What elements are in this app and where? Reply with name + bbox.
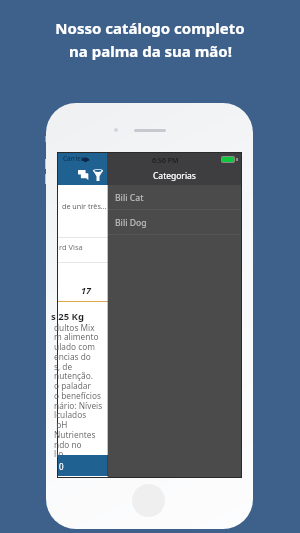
staticText: 0 — [59, 461, 64, 472]
staticText: o benefícios — [54, 390, 101, 401]
button[interactable]: Bili Cat — [108, 185, 241, 210]
staticText: na palma da sua mão! — [69, 41, 232, 61]
staticText: ulado com — [54, 341, 95, 352]
staticText: o paladar — [54, 380, 91, 391]
staticText: Carrier — [63, 154, 84, 162]
staticText: 6:56 PM — [152, 156, 179, 166]
staticText: nutenção. — [54, 370, 93, 381]
staticText: de unir três... — [62, 201, 107, 211]
staticText: pH — [54, 419, 68, 430]
staticText: 17 — [81, 284, 91, 296]
staticText: dultos Mix — [54, 322, 95, 333]
button[interactable]: Bili Dog — [108, 210, 241, 235]
staticText: lio. — [54, 448, 66, 459]
staticText: lculados — [54, 409, 87, 420]
staticText: m alimento — [54, 331, 99, 342]
staticText: Bili Cat — [115, 192, 144, 204]
staticText: rd Visa — [59, 242, 83, 252]
staticText: Bili Dog — [115, 217, 147, 229]
staticText: Nosso catálogo completo — [55, 18, 245, 38]
staticText: nário: Níveis — [54, 400, 103, 411]
button[interactable]: Comparar — [76, 168, 91, 182]
staticText: ndo no — [54, 439, 82, 450]
staticText: Categorias — [153, 170, 196, 182]
staticText: s 25 Kg — [51, 310, 84, 323]
staticText: encias do — [54, 351, 91, 362]
staticText: Nutrientes — [54, 429, 96, 440]
staticText: s, de — [54, 361, 73, 372]
button[interactable]: Filtrar — [91, 168, 104, 182]
button[interactable]: 0 — [58, 455, 108, 476]
